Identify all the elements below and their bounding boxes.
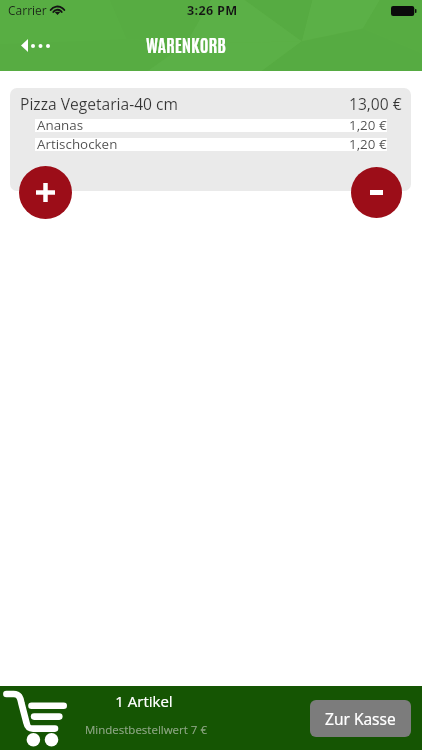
staticText: Mindestbestellwert 7 €	[60, 722, 232, 738]
button[interactable]: Zur Kasse	[310, 700, 411, 737]
staticText: Ananas	[37, 116, 84, 134]
staticText: Pizza Vegetaria-40 cm	[20, 93, 178, 114]
button[interactable]: Shopping cart	[0, 686, 72, 750]
staticText: Zur Kasse	[325, 708, 396, 729]
staticText: 1,20 €	[349, 135, 387, 153]
staticText: 1,20 €	[349, 116, 387, 134]
button[interactable]	[35, 138, 387, 151]
button[interactable]: Decrease quantity	[351, 167, 402, 218]
staticText: 3:26 PM	[187, 2, 238, 19]
button[interactable]: Back	[14, 34, 57, 57]
button[interactable]: Increase quantity	[19, 166, 72, 219]
staticText: Carrier	[8, 2, 47, 18]
staticText: Artischocken	[37, 135, 118, 153]
staticText: 1 Artikel	[58, 691, 230, 711]
button[interactable]	[35, 119, 387, 132]
staticText: 13,00 €	[349, 93, 402, 114]
staticText: WARENKORB	[146, 32, 226, 55]
button[interactable]: Pizza Vegetaria-40 cm	[10, 88, 411, 119]
